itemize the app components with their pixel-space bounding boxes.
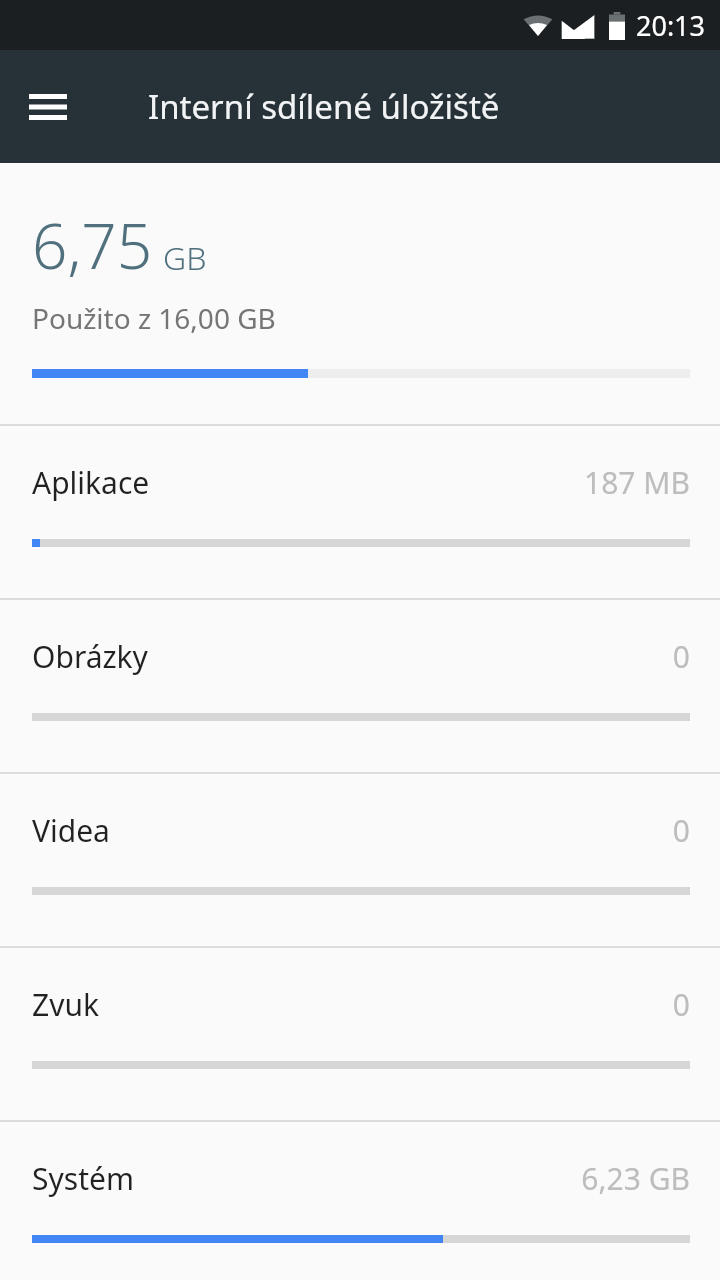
staticText: Použito z 16,00 GB (32, 299, 276, 337)
staticText: Aplikace (32, 462, 150, 503)
staticText: 6,75 (32, 203, 153, 287)
staticText: Systém (32, 1158, 134, 1199)
button[interactable]: Videa (0, 772, 720, 946)
staticText: 0 (672, 810, 690, 851)
button[interactable]: Navigační nabídka (20, 79, 76, 135)
staticText: GB (163, 236, 207, 280)
staticText: 0 (672, 984, 690, 1025)
staticText: Obrázky (32, 636, 148, 677)
staticText: Videa (32, 810, 110, 851)
staticText: 20:13 (636, 7, 706, 44)
staticText: 0 (672, 636, 690, 677)
button[interactable]: Systém (0, 1120, 720, 1280)
button[interactable]: Aplikace (0, 424, 720, 598)
staticText: Interní sdílené úložiště (148, 84, 500, 129)
button[interactable]: Zvuk (0, 946, 720, 1120)
button[interactable]: 6,75 (0, 163, 720, 424)
staticText: 187 MB (584, 462, 690, 503)
staticText: Zvuk (32, 984, 99, 1025)
staticText: 6,23 GB (581, 1158, 690, 1199)
button[interactable]: Obrázky (0, 598, 720, 772)
